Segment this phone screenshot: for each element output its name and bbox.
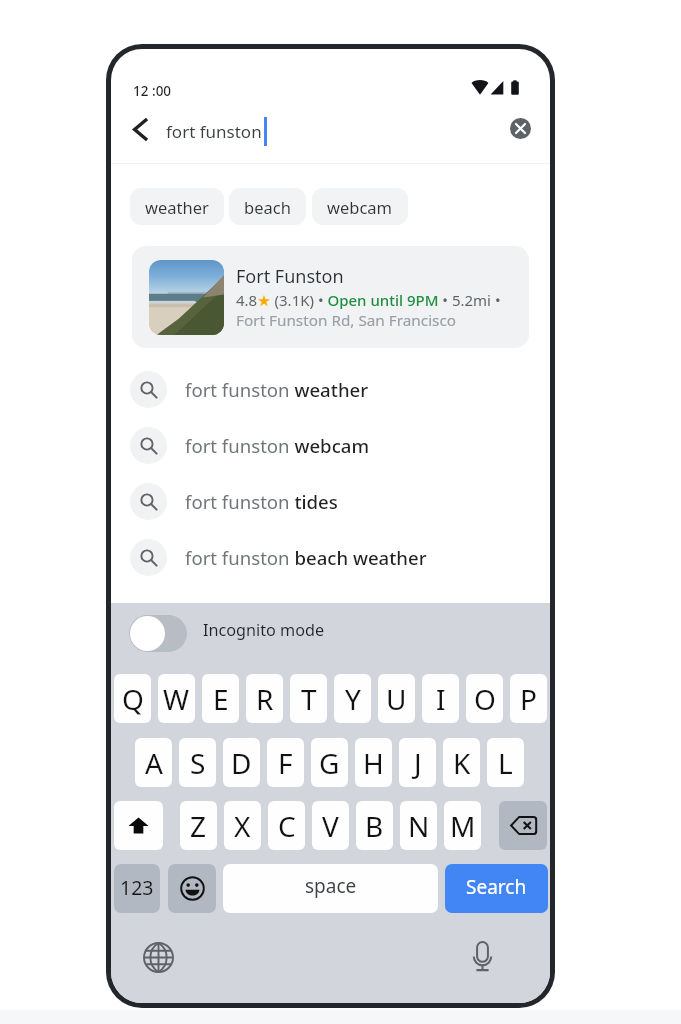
button[interactable]: Change language — [141, 940, 175, 974]
staticText: O — [474, 680, 496, 718]
button[interactable]: 123 — [114, 864, 160, 913]
staticText: D — [231, 744, 252, 782]
staticText: Z — [190, 807, 207, 845]
button[interactable]: N — [400, 801, 437, 850]
staticText: I — [436, 680, 446, 718]
staticText: fort funston — [166, 120, 262, 143]
staticText: space — [305, 873, 357, 899]
staticText: T — [301, 680, 317, 718]
staticText: A — [145, 744, 163, 782]
button[interactable]: J — [399, 738, 436, 787]
staticText: Incognito mode — [203, 619, 325, 641]
button[interactable]: S — [179, 738, 216, 787]
button[interactable]: webcam — [312, 188, 408, 225]
staticText: B — [365, 807, 384, 845]
button[interactable]: W — [158, 674, 195, 723]
button[interactable]: fort funston beach weather — [111, 539, 550, 576]
staticText: L — [498, 744, 513, 782]
button[interactable]: A — [135, 738, 172, 787]
staticText: P — [520, 680, 537, 718]
staticText: Fort Funston — [236, 264, 344, 289]
button[interactable]: L — [487, 738, 524, 787]
staticText: Search — [466, 874, 527, 900]
staticText: J — [414, 744, 422, 782]
staticText: fort funston webcam — [185, 433, 370, 458]
staticText: Q — [122, 680, 144, 718]
staticText: fort funston weather — [185, 377, 369, 402]
staticText: beach — [244, 196, 291, 218]
button[interactable]: G — [311, 738, 348, 787]
staticText: weather — [145, 196, 209, 218]
staticText: G — [319, 744, 340, 782]
button[interactable]: Emoji — [168, 864, 216, 913]
button[interactable]: Backspace — [499, 801, 547, 850]
staticText: F — [278, 744, 293, 782]
staticText: X — [234, 807, 251, 845]
button[interactable]: fort funston weather — [111, 371, 550, 408]
staticText: H — [363, 744, 384, 782]
staticText: fort funston tides — [185, 489, 338, 514]
staticText: M — [450, 807, 476, 845]
button[interactable]: Fort Funston — [132, 246, 529, 348]
staticText: R — [256, 680, 274, 718]
button[interactable]: K — [443, 738, 480, 787]
staticText: C — [278, 807, 296, 845]
button[interactable]: Y — [334, 674, 371, 723]
staticText: Fort Funston Rd, San Francisco — [236, 310, 457, 331]
button[interactable]: space — [223, 864, 438, 913]
button[interactable]: Voice input — [465, 939, 499, 973]
staticText: webcam — [327, 196, 393, 218]
button[interactable]: I — [422, 674, 459, 723]
button[interactable]: Shift — [114, 801, 163, 850]
button[interactable]: Back — [124, 112, 158, 146]
button[interactable]: M — [444, 801, 481, 850]
button[interactable]: fort funston webcam — [111, 427, 550, 464]
staticText: N — [408, 807, 430, 845]
button[interactable]: U — [378, 674, 415, 723]
staticText: 4.8★ (3.1K) • Open until 9PM • 5.2mi • — [236, 290, 501, 310]
button[interactable]: Z — [180, 801, 217, 850]
staticText: K — [453, 744, 471, 782]
button[interactable]: D — [223, 738, 260, 787]
button[interactable]: R — [246, 674, 283, 723]
button[interactable]: B — [356, 801, 393, 850]
staticText: 123 — [120, 874, 154, 901]
button[interactable]: O — [466, 674, 503, 723]
button[interactable]: C — [268, 801, 305, 850]
button[interactable]: P — [510, 674, 547, 723]
button[interactable]: V — [312, 801, 349, 850]
button[interactable]: X — [224, 801, 261, 850]
button[interactable]: Clear search — [503, 111, 537, 145]
staticText: 12 :00 — [133, 82, 172, 100]
staticText: W — [163, 680, 190, 718]
button[interactable] — [129, 615, 187, 652]
staticText: E — [213, 680, 229, 718]
staticText: U — [386, 680, 407, 718]
button[interactable]: F — [267, 738, 304, 787]
button[interactable]: Search — [445, 864, 548, 913]
staticText: V — [322, 807, 339, 845]
button[interactable]: E — [202, 674, 239, 723]
staticText: S — [190, 744, 206, 782]
button[interactable]: weather — [130, 188, 224, 225]
button[interactable]: T — [290, 674, 327, 723]
button[interactable]: Q — [114, 674, 151, 723]
staticText: fort funston beach weather — [185, 545, 427, 570]
button[interactable]: H — [355, 738, 392, 787]
button[interactable]: fort funston tides — [111, 483, 550, 520]
button[interactable]: beach — [229, 188, 306, 225]
staticText: Y — [345, 680, 361, 718]
